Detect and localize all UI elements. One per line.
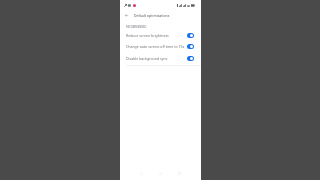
staticText: Reduce screen brightness [126, 33, 169, 38]
staticText: Disable background sync [126, 56, 168, 61]
button[interactable]: Disable background sync [120, 52, 201, 64]
button[interactable]: Change auto screen-off time to 15s [120, 40, 201, 52]
button[interactable]: Reduce screen brightness [120, 29, 201, 41]
staticText: Default optimisations [134, 13, 170, 18]
button[interactable]: Back [122, 11, 131, 20]
button[interactable]: Recents [175, 169, 183, 177]
staticText: RECOMMENDED [126, 25, 147, 28]
staticText: Change auto screen-off time to 15s [126, 44, 185, 49]
